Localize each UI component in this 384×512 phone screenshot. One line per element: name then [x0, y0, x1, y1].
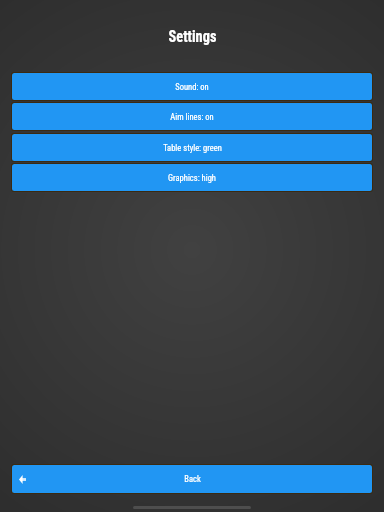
button[interactable]: Table style: green: [12, 134, 372, 161]
staticText: Table style: green: [163, 143, 222, 153]
staticText: Sound: on: [175, 82, 209, 92]
staticText: Aim lines: on: [170, 112, 214, 122]
staticText: Graphics: high: [168, 173, 216, 183]
button[interactable]: Sound: on: [12, 73, 372, 100]
button[interactable]: Aim lines: on: [12, 103, 372, 130]
staticText: Settings: [169, 27, 216, 46]
button[interactable]: Graphics: high: [12, 164, 372, 191]
button[interactable]: Back: [12, 465, 372, 493]
staticText: Back: [184, 474, 201, 484]
